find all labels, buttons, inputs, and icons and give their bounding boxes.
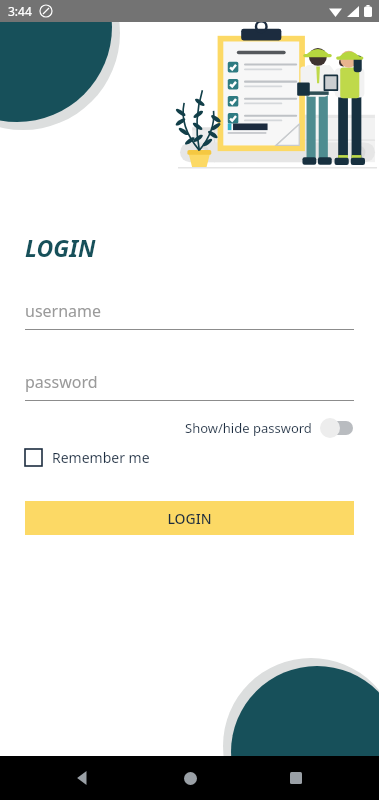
staticText: Remember me	[52, 448, 150, 467]
button[interactable]: Back	[59, 756, 107, 800]
button[interactable]: Home	[166, 756, 214, 800]
button[interactable]: password	[25, 371, 354, 401]
button[interactable]: Recents	[272, 756, 320, 800]
staticText: 3:44	[8, 3, 32, 19]
staticText: LOGIN	[167, 509, 212, 528]
staticText: Show/hide password	[185, 419, 312, 437]
button[interactable]: Show/hide password	[185, 416, 354, 440]
button[interactable]: LOGIN	[25, 501, 354, 535]
staticText: password	[25, 371, 98, 393]
staticText: LOGIN	[25, 232, 96, 263]
button[interactable]: Remember me	[25, 446, 150, 469]
staticText: username	[25, 300, 102, 322]
button[interactable]: username	[25, 300, 354, 330]
